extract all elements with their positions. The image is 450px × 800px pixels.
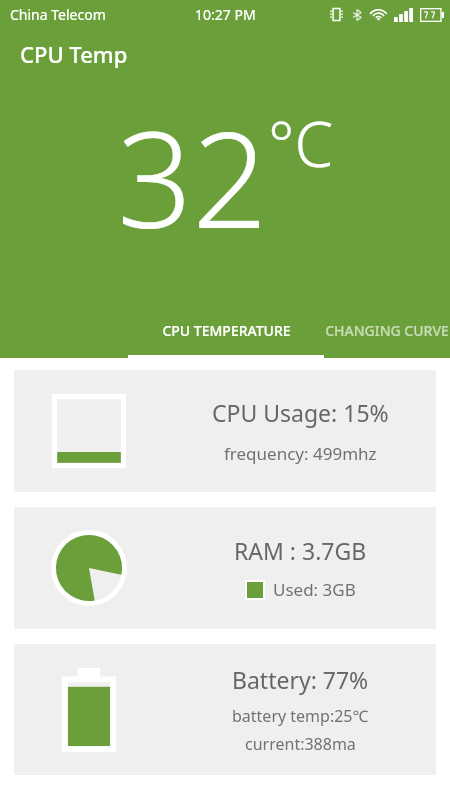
other: Cellular signal xyxy=(394,8,413,22)
button[interactable]: CPU TEMPERATURE xyxy=(128,310,324,358)
staticText: China Telecom xyxy=(10,5,106,24)
staticText: CHANGING CURVE xyxy=(325,321,449,340)
button[interactable]: RAM : 3.7GB xyxy=(14,507,436,629)
staticText: CPU TEMPERATURE xyxy=(162,321,291,340)
other: Bluetooth xyxy=(351,9,363,21)
staticText: CPU Temp xyxy=(20,39,128,69)
staticText: Battery: 77% xyxy=(232,664,369,695)
staticText: current:388ma xyxy=(245,733,356,755)
staticText: frequency: 499mhz xyxy=(224,442,377,465)
staticText: 10:27 PM xyxy=(195,5,256,24)
other: Battery 77 percent xyxy=(420,8,444,22)
staticText: RAM : 3.7GB xyxy=(234,535,367,566)
button[interactable]: Battery: 77% xyxy=(14,644,436,775)
staticText: battery temp:25℃ xyxy=(232,705,369,727)
staticText: °C xyxy=(268,101,334,185)
staticText: 32 xyxy=(117,87,268,267)
staticText: Used: 3GB xyxy=(273,578,356,601)
staticText: CPU Usage: 15% xyxy=(212,397,389,428)
button[interactable]: CPU Usage: 15% xyxy=(14,370,436,492)
other: Wi-Fi xyxy=(370,8,387,21)
other: Vibrate mode xyxy=(329,7,344,22)
button[interactable]: CHANGING CURVE xyxy=(324,310,450,358)
